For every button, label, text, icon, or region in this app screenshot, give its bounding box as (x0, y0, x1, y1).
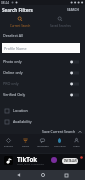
staticText: Deselect All (3, 33, 23, 38)
staticText: 08:24 (1, 1, 10, 5)
staticText: Online only (3, 70, 23, 75)
button[interactable]: SEARCH (66, 6, 80, 14)
button[interactable]: Online only (0, 67, 85, 78)
button[interactable]: PRO only (0, 78, 85, 89)
staticText: Photo only (3, 59, 22, 64)
button[interactable]: Back (13, 170, 24, 180)
staticText: Location (13, 108, 28, 113)
button[interactable]: Messages (34, 134, 51, 153)
button[interactable]: Deselect All (0, 32, 25, 39)
staticText: Filters (22, 144, 30, 147)
staticText: Live Cams (54, 144, 66, 147)
button[interactable]: Live Cams (51, 134, 68, 153)
staticText: TikTok (17, 155, 38, 163)
button[interactable]: Save Current Search (42, 128, 82, 135)
staticText: PRO only (3, 81, 19, 86)
staticText: Profile Name (4, 46, 27, 51)
staticText: Explore (4, 144, 13, 147)
button[interactable]: Explore (0, 134, 17, 153)
staticText: Search Filters (2, 7, 33, 13)
staticText: SEARCH (67, 8, 79, 12)
staticText: Saved Searches (50, 24, 71, 28)
button[interactable]: Location (0, 105, 85, 116)
staticText: Vídeos, Música e Transmissões (17, 163, 45, 166)
button[interactable]: Profile Name (2, 43, 80, 53)
button[interactable]: INSTALAR (62, 158, 78, 164)
button[interactable]: Recent apps (61, 170, 72, 180)
button[interactable]: Photo only (0, 56, 85, 67)
button[interactable]: Login (68, 134, 85, 153)
staticText: Messages (37, 144, 49, 147)
button[interactable]: Saved Searches (40, 14, 80, 30)
staticText: INSTALAR (64, 159, 77, 163)
staticText: Save Current Search (42, 129, 76, 134)
button[interactable]: Availability (0, 116, 85, 127)
button[interactable]: Current Search (0, 14, 40, 30)
staticText: Availability (13, 119, 32, 124)
staticText: Login (73, 144, 80, 147)
button[interactable]: Filters (17, 134, 34, 153)
staticText: Verified Only (3, 92, 26, 97)
button[interactable]: TikTok (0, 154, 85, 170)
button[interactable]: Home (37, 170, 48, 180)
button[interactable]: Verified Only (0, 89, 85, 100)
staticText: Current Search (10, 24, 31, 28)
